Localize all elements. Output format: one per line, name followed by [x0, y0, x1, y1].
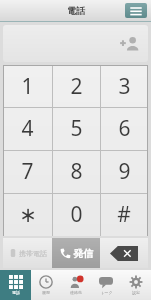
staticText: トーク	[100, 290, 113, 295]
staticText: ∗	[19, 203, 37, 227]
staticText: 履歴	[42, 290, 50, 295]
button[interactable]: Menu	[125, 3, 147, 18]
staticText: 4	[21, 114, 34, 143]
button[interactable]: 8	[52, 150, 100, 193]
button[interactable]: 5	[52, 107, 100, 150]
staticText: 電話	[67, 5, 85, 16]
button[interactable]: 7	[3, 150, 52, 193]
button[interactable]: 電話	[0, 270, 31, 300]
button[interactable]: 2	[52, 65, 100, 107]
button[interactable]: Add contact	[3, 25, 148, 62]
button[interactable]: #	[100, 193, 148, 236]
staticText: 設定	[132, 290, 140, 295]
button[interactable]: Add contact	[119, 33, 141, 55]
staticText: 1	[21, 72, 34, 101]
button[interactable]: 連絡先	[61, 270, 91, 300]
button[interactable]: 履歴	[31, 270, 61, 300]
button[interactable]: トーク	[91, 270, 121, 300]
staticText: 7	[21, 157, 34, 186]
staticText: 携帯電話	[19, 249, 47, 258]
button[interactable]: 0	[52, 193, 100, 236]
button[interactable]: 3	[100, 65, 148, 107]
staticText: 6	[118, 114, 131, 143]
button[interactable]: ∗	[3, 193, 52, 236]
button[interactable]: 発信	[52, 238, 100, 268]
button[interactable]: 携帯電話	[3, 238, 52, 268]
staticText: 3	[118, 72, 131, 101]
button[interactable]: 1	[3, 65, 52, 107]
staticText: 0	[70, 200, 83, 229]
button[interactable]: 4	[3, 107, 52, 150]
staticText: 連絡先	[70, 290, 82, 295]
staticText: #	[117, 200, 131, 229]
button[interactable]: 6	[100, 107, 148, 150]
staticText: 9	[118, 157, 131, 186]
staticText: 5	[70, 114, 83, 143]
staticText: 電話	[12, 290, 20, 295]
button[interactable]: 設定	[121, 270, 151, 300]
button[interactable]: Backspace	[100, 238, 148, 268]
button[interactable]: 9	[100, 150, 148, 193]
staticText: 2	[70, 72, 83, 101]
staticText: 8	[70, 157, 83, 186]
staticText: 発信	[73, 247, 93, 260]
